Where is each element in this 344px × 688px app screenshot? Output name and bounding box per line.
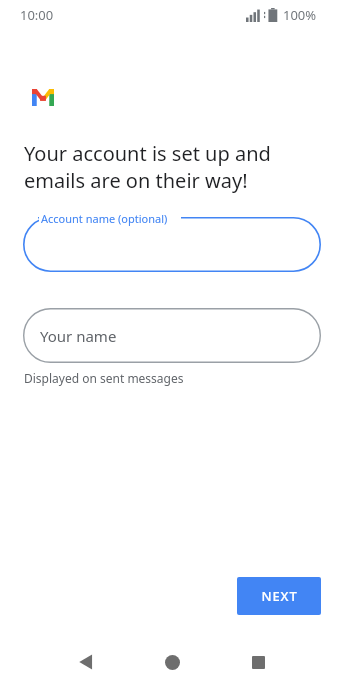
button[interactable]: Home <box>148 638 196 686</box>
button[interactable]: NEXT <box>237 577 321 615</box>
button[interactable]: Recent apps <box>234 638 282 686</box>
staticText: Your account is set up and <box>24 140 271 167</box>
staticText: NEXT <box>261 587 298 605</box>
staticText: 100% <box>283 6 317 24</box>
staticText: emails are on their way! <box>24 167 248 194</box>
staticText: Displayed on sent messages <box>24 370 184 386</box>
staticText: Your name <box>40 326 117 346</box>
staticText: Account name (optional) <box>41 211 168 226</box>
button[interactable]: Back <box>62 638 110 686</box>
button[interactable] <box>23 217 321 272</box>
staticText: 10:00 <box>20 6 54 24</box>
button[interactable]: Your name <box>23 308 321 363</box>
